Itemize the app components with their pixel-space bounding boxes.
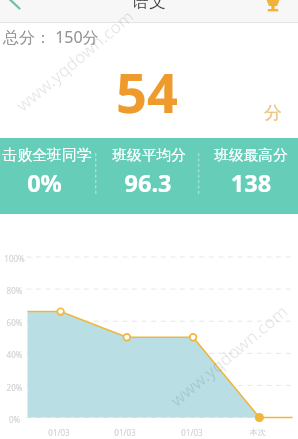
staticText: 击败全班同学 (0, 146, 107, 165)
staticText: 本次 (233, 427, 283, 437)
staticText: 96.3 (103, 167, 193, 199)
staticText: 0% (0, 167, 89, 199)
staticText: www.yqdown.com (11, 4, 139, 116)
staticText: 分 (264, 102, 294, 125)
staticText: www.yqdown.com (165, 299, 293, 411)
staticText: 01/03 (34, 427, 84, 438)
staticText: 总分： 150分 (3, 26, 173, 48)
staticText: 0% (1, 414, 28, 425)
staticText: 20% (1, 382, 28, 393)
button[interactable]: Ranking (262, 0, 284, 13)
staticText: 80% (1, 285, 28, 296)
staticText: 138 (206, 167, 296, 199)
staticText: 60% (1, 317, 28, 328)
staticText: 01/03 (167, 427, 217, 438)
staticText: 54 (47, 55, 247, 129)
staticText: 班级平均分 (104, 146, 194, 164)
staticText: 40% (1, 349, 28, 360)
staticText: 01/03 (100, 427, 150, 438)
staticText: 语文 (109, 0, 189, 12)
staticText: 班级最高分 (206, 146, 296, 164)
staticText: 100% (1, 253, 28, 264)
